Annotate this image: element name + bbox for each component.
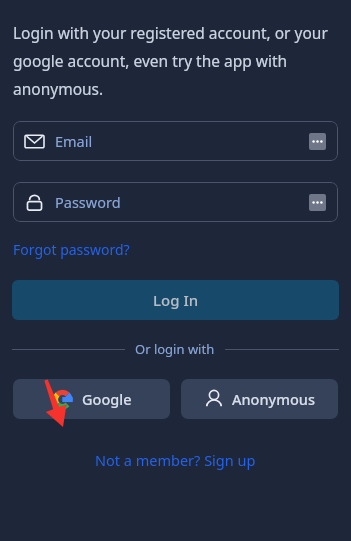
button[interactable]: Forgot password? [13, 238, 130, 261]
button[interactable]: Anonymous user [181, 379, 338, 419]
other: Anonymous user [204, 389, 224, 409]
button[interactable]: Not a member? Sign up [91, 446, 260, 474]
staticText: Forgot password? [13, 240, 130, 259]
button[interactable]: Google [13, 379, 170, 419]
staticText: Not a member? Sign up [95, 450, 256, 470]
button[interactable]: Password [13, 182, 338, 222]
staticText: Or login with [135, 340, 215, 358]
staticText: Anonymous [232, 389, 315, 409]
staticText: Log In [153, 290, 199, 310]
staticText: Password [55, 192, 309, 212]
other: Google [52, 389, 73, 410]
button[interactable]: Log In [12, 280, 339, 320]
button[interactable]: Email [13, 121, 338, 161]
staticText: Login with your registered account, or y… [13, 22, 331, 100]
staticText: Email [55, 131, 309, 151]
staticText: Google [82, 389, 132, 409]
